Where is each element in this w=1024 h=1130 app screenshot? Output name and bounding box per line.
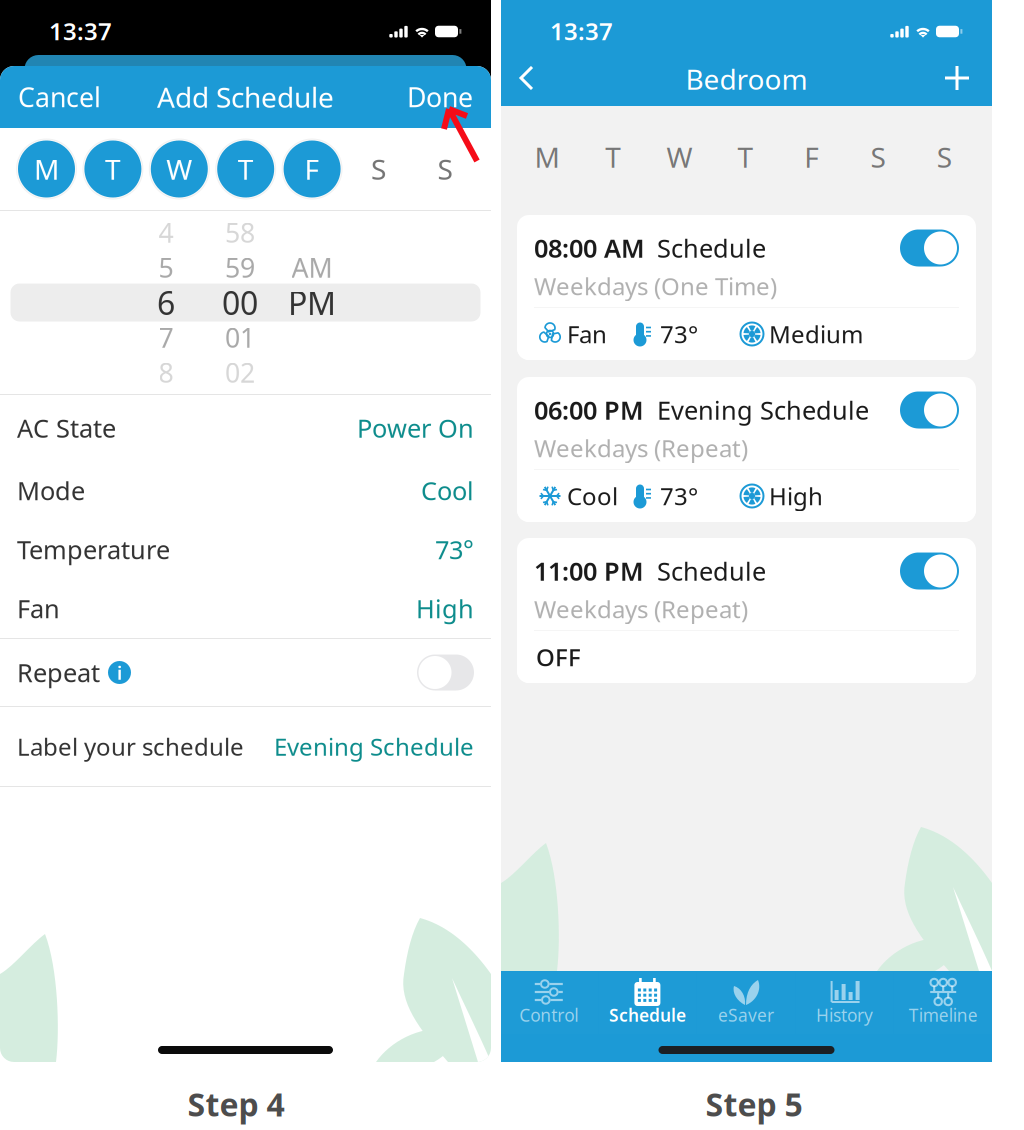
- button[interactable]: Fan: [0, 579, 491, 638]
- staticText: 73°: [435, 533, 474, 566]
- staticText: F: [305, 150, 320, 188]
- button[interactable]: History: [796, 972, 894, 1034]
- button[interactable]: M: [15, 138, 77, 200]
- button[interactable]: eSaver: [697, 972, 795, 1034]
- staticText: Step 5: [705, 1083, 802, 1125]
- staticText: 06:00 PM: [534, 393, 644, 427]
- button[interactable]: S: [347, 138, 409, 200]
- staticText: T: [105, 150, 121, 188]
- staticText: eSaver: [718, 1003, 774, 1026]
- staticText: Weekdays (One Time): [534, 270, 777, 302]
- staticText: T: [238, 150, 254, 188]
- staticText: T: [738, 138, 754, 176]
- staticText: Timeline: [909, 1003, 978, 1026]
- button[interactable]: Toggle 08:00 AM Schedule: [900, 229, 959, 266]
- staticText: Bedroom: [685, 60, 807, 98]
- staticText: Evening Schedule: [657, 393, 869, 427]
- staticText: Cool: [567, 480, 618, 512]
- staticText: Control: [519, 1003, 578, 1026]
- staticText: 4: [158, 215, 173, 250]
- staticText: Fan: [567, 318, 607, 350]
- staticText: 13:37: [550, 15, 613, 47]
- staticText: S: [371, 150, 386, 188]
- staticText: Done: [407, 79, 473, 115]
- staticText: Cancel: [18, 79, 101, 115]
- staticText: 13:37: [49, 15, 112, 47]
- button[interactable]: Mode: [0, 461, 491, 520]
- staticText: 73°: [660, 480, 698, 512]
- button[interactable]: Control: [500, 972, 598, 1034]
- button[interactable]: AC State: [0, 395, 491, 461]
- button[interactable]: Back: [505, 55, 551, 101]
- button[interactable]: Add schedule: [934, 55, 980, 101]
- staticText: Repeat: [17, 656, 100, 689]
- staticText: Power On: [357, 411, 474, 445]
- staticText: AC State: [17, 411, 116, 445]
- button[interactable]: Toggle 11:00 PM Schedule: [900, 552, 959, 589]
- staticText: Schedule: [657, 231, 766, 265]
- staticText: Mode: [17, 474, 85, 507]
- staticText: Schedule: [657, 554, 766, 588]
- staticText: Schedule: [609, 1003, 686, 1026]
- button[interactable]: Cancel: [0, 66, 119, 128]
- staticText: 7: [158, 320, 173, 355]
- staticText: Label your schedule: [17, 731, 244, 762]
- button[interactable]: Toggle 06:00 PM Evening Schedule: [900, 391, 959, 428]
- button[interactable]: Temperature: [0, 520, 491, 579]
- staticText: S: [937, 138, 952, 176]
- button[interactable]: Schedule: [598, 972, 696, 1034]
- staticText: 5: [158, 250, 173, 285]
- button[interactable]: Repeat: [417, 654, 474, 690]
- button[interactable]: T: [215, 138, 277, 200]
- button[interactable]: Done: [389, 66, 491, 128]
- button[interactable]: Label your schedule: [0, 707, 491, 786]
- staticText: Medium: [769, 318, 863, 350]
- staticText: i: [117, 660, 122, 685]
- staticText: W: [666, 138, 692, 176]
- staticText: 08:00 AM: [534, 231, 645, 265]
- button[interactable]: Timeline: [894, 972, 992, 1034]
- staticText: M: [534, 138, 559, 176]
- staticText: Cool: [421, 474, 474, 507]
- button[interactable]: T: [82, 138, 144, 200]
- staticText: S: [870, 138, 885, 176]
- staticText: 01: [225, 320, 255, 355]
- staticText: 59: [225, 250, 255, 285]
- staticText: Step 4: [187, 1083, 284, 1125]
- button[interactable]: F: [281, 138, 343, 200]
- staticText: High: [769, 480, 823, 512]
- button[interactable]: S: [414, 138, 476, 200]
- staticText: OFF: [536, 641, 581, 673]
- staticText: History: [816, 1003, 873, 1026]
- staticText: Add Schedule: [157, 78, 334, 116]
- staticText: 00: [222, 281, 258, 324]
- staticText: F: [804, 138, 819, 176]
- staticText: AM: [291, 250, 332, 285]
- staticText: Evening Schedule: [274, 731, 474, 762]
- staticText: T: [605, 138, 621, 176]
- staticText: M: [34, 150, 59, 188]
- staticText: 73°: [660, 318, 698, 350]
- staticText: Temperature: [17, 533, 170, 566]
- staticText: 8: [158, 355, 173, 390]
- staticText: 11:00 PM: [534, 554, 644, 588]
- staticText: S: [437, 150, 452, 188]
- staticText: PM: [288, 281, 336, 324]
- staticText: Fan: [17, 592, 60, 625]
- staticText: High: [416, 592, 474, 625]
- staticText: 6: [157, 281, 175, 324]
- staticText: Weekdays (Repeat): [534, 593, 748, 625]
- staticText: 58: [225, 215, 255, 250]
- staticText: 02: [225, 355, 255, 390]
- button[interactable]: W: [148, 138, 210, 200]
- staticText: W: [166, 150, 192, 188]
- staticText: Weekdays (Repeat): [534, 432, 748, 464]
